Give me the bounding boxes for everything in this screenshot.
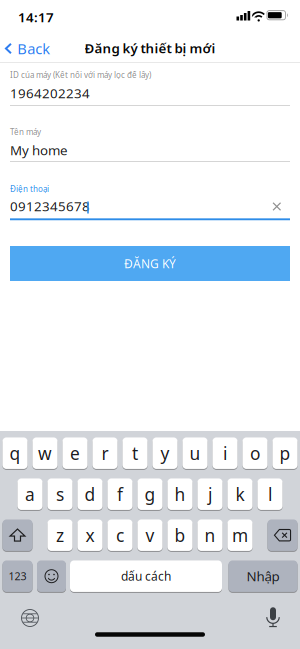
staticText: l	[268, 483, 272, 506]
staticText: v	[145, 524, 154, 547]
button[interactable]: Shift	[0, 0, 300, 649]
button[interactable]: Delete	[0, 0, 300, 649]
button[interactable]: f	[0, 0, 300, 649]
staticText: y	[160, 442, 169, 465]
button[interactable]: e	[0, 0, 300, 649]
staticText: n	[204, 524, 215, 547]
staticText: Điện thoại	[10, 184, 49, 194]
button[interactable]: y	[0, 0, 300, 649]
staticText: 123	[8, 569, 26, 583]
staticText: a	[25, 483, 35, 506]
staticText: u	[189, 442, 200, 465]
staticText: My home	[10, 141, 68, 159]
button[interactable]: t	[0, 0, 300, 649]
staticText: i	[223, 442, 227, 465]
staticText: o	[250, 442, 260, 465]
button[interactable]: p	[0, 0, 300, 649]
staticText: Tên máy	[10, 127, 41, 137]
staticText: p	[279, 442, 290, 465]
staticText: d	[84, 483, 95, 506]
button[interactable]: k	[0, 0, 300, 649]
button[interactable]: i	[0, 0, 300, 649]
button[interactable]: Next keyboard	[21, 609, 38, 626]
button[interactable]: r	[0, 0, 300, 649]
button[interactable]: 123	[0, 0, 300, 649]
button[interactable]: l	[0, 0, 300, 649]
staticText: 0912345678	[10, 197, 90, 215]
staticText: dấu cách	[121, 568, 171, 584]
staticText: 14:17	[18, 8, 54, 26]
button[interactable]: w	[0, 0, 300, 649]
staticText: m	[232, 524, 248, 547]
staticText: Back	[17, 39, 50, 58]
staticText: ĐĂNG KÝ	[124, 255, 176, 271]
staticText: x	[85, 524, 94, 547]
staticText: 1964202234	[10, 84, 90, 102]
button[interactable]: c	[0, 0, 300, 649]
staticText: b	[174, 524, 185, 547]
button[interactable]: b	[0, 0, 300, 649]
button[interactable]: Nhập	[0, 0, 300, 649]
staticText: r	[101, 442, 108, 465]
button[interactable]: x	[0, 0, 300, 649]
button[interactable]: ĐĂNG KÝ	[10, 246, 290, 281]
button[interactable]: a	[0, 0, 300, 649]
staticText: s	[56, 483, 64, 506]
button[interactable]: o	[0, 0, 300, 649]
button[interactable]: z	[0, 0, 300, 649]
staticText: ID của máy (Kết nối với máy lọc để lấy)	[10, 70, 151, 80]
staticText: q	[9, 442, 20, 465]
staticText: h	[174, 483, 185, 506]
staticText: j	[208, 483, 212, 506]
button[interactable]: g	[0, 0, 300, 649]
button[interactable]: dấu cách	[0, 0, 300, 649]
staticText: Nhập	[246, 567, 279, 585]
button[interactable]: m	[0, 0, 300, 649]
staticText: z	[56, 524, 64, 547]
button[interactable]: Emoji	[0, 0, 300, 649]
button[interactable]: Dictation	[265, 607, 280, 627]
staticText: f	[117, 483, 123, 506]
staticText: t	[132, 442, 138, 465]
button[interactable]: Back	[2, 33, 53, 63]
staticText: g	[144, 483, 155, 506]
button[interactable]: n	[0, 0, 300, 649]
button[interactable]: u	[0, 0, 300, 649]
staticText: w	[38, 442, 52, 465]
button[interactable]: Clear text	[272, 202, 282, 211]
staticText: k	[235, 483, 244, 506]
button[interactable]: v	[0, 0, 300, 649]
button[interactable]: d	[0, 0, 300, 649]
button[interactable]: j	[0, 0, 300, 649]
button[interactable]: s	[0, 0, 300, 649]
staticText: c	[116, 524, 124, 547]
button[interactable]: q	[0, 0, 300, 649]
staticText: e	[70, 442, 80, 465]
staticText: Đăng ký thiết bị mới	[84, 39, 215, 57]
button[interactable]: h	[0, 0, 300, 649]
